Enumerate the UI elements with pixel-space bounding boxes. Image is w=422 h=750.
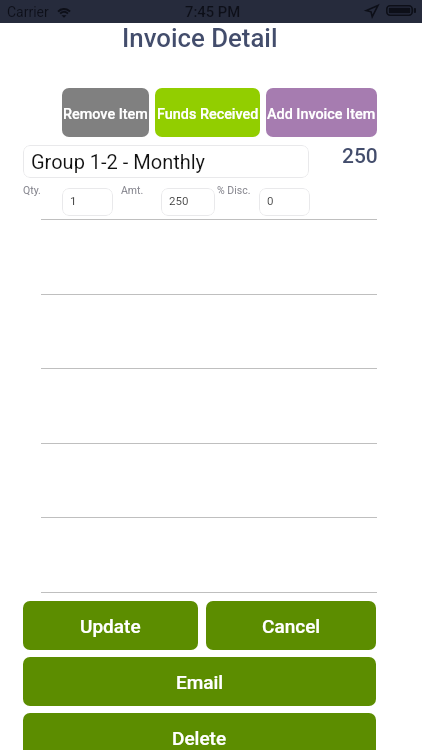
other: Location [366, 5, 378, 17]
button[interactable]: Add Invoice Item [266, 88, 377, 137]
staticText: Update [80, 615, 141, 637]
staticText: Funds Received [157, 106, 259, 123]
button[interactable]: Funds Received [155, 88, 260, 137]
staticText: Qty. [23, 184, 41, 196]
staticText: 0 [267, 194, 274, 207]
button[interactable]: 0 [259, 188, 310, 216]
other: Wi-Fi signal [56, 4, 72, 18]
staticText: Delete [172, 727, 227, 749]
staticText: 250 [169, 194, 189, 207]
staticText: % Disc. [217, 184, 251, 196]
staticText: Group 1-2 - Monthly [31, 150, 206, 173]
staticText: Amt. [121, 184, 144, 196]
staticText: Carrier [7, 4, 49, 20]
button[interactable]: Cancel [206, 601, 376, 650]
other: Battery [386, 5, 418, 16]
staticText: Email [176, 671, 224, 693]
button[interactable]: Update [23, 601, 198, 650]
staticText: Invoice Detail [122, 23, 278, 51]
button[interactable]: 250 [161, 188, 215, 216]
button[interactable]: Email [23, 657, 376, 706]
button[interactable]: Group 1-2 - Monthly [23, 145, 309, 178]
staticText: 1 [70, 194, 77, 207]
staticText: Remove Item [63, 106, 148, 123]
button[interactable]: 1 [62, 188, 113, 216]
button[interactable]: Delete [23, 713, 376, 750]
button[interactable]: Remove Item [62, 88, 149, 137]
staticText: 7:45 PM [185, 3, 241, 20]
staticText: Add Invoice Item [267, 106, 376, 123]
staticText: Cancel [262, 615, 321, 637]
staticText: 250 [342, 144, 378, 169]
